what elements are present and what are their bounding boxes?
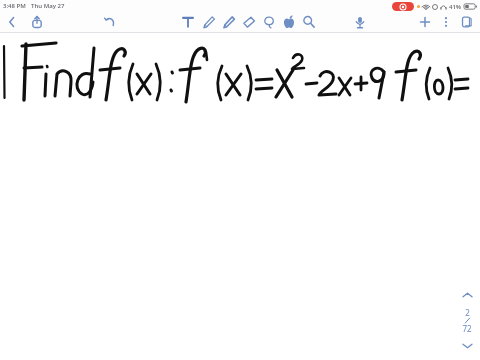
button[interactable]: Add (417, 14, 433, 30)
button[interactable]: Recording (392, 2, 414, 11)
button[interactable]: Share (29, 14, 45, 30)
button[interactable]: Pen (201, 14, 217, 30)
button[interactable]: Lasso select (261, 14, 277, 30)
button[interactable]: Zoom (301, 14, 317, 30)
button[interactable]: Text tool (180, 14, 196, 30)
button[interactable]: 2 (462, 307, 472, 334)
button[interactable]: Eraser (241, 14, 257, 30)
button[interactable]: Highlighter (221, 14, 237, 30)
button[interactable] (0, 33, 480, 360)
button[interactable]: More options (440, 14, 452, 30)
staticText: Thu May 27 (31, 2, 65, 10)
button[interactable]: Back (4, 14, 20, 30)
staticText: 72 (462, 323, 472, 334)
button[interactable]: Page thumbnails (459, 14, 475, 30)
button[interactable]: Next page (459, 340, 475, 352)
button[interactable]: Undo (102, 14, 118, 30)
staticText: 41% (449, 3, 462, 11)
staticText: 3:48 PM (3, 2, 26, 10)
button[interactable]: Sticker (281, 14, 297, 30)
staticText: 2 (465, 307, 470, 318)
button[interactable]: Record audio (352, 14, 368, 30)
button[interactable]: Previous page (459, 289, 475, 301)
